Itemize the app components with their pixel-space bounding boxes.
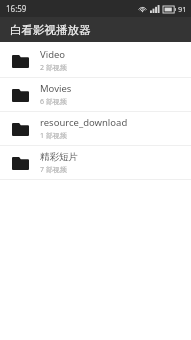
staticText: Video xyxy=(40,48,66,61)
button[interactable]: 精彩短片 xyxy=(0,146,191,179)
button[interactable]: resource_download xyxy=(0,112,191,145)
staticText: 6 部视频 xyxy=(40,97,67,107)
button[interactable]: Video xyxy=(0,44,191,77)
button[interactable]: Movies xyxy=(0,78,191,111)
staticText: 91 xyxy=(178,4,187,14)
staticText: 1 部视频 xyxy=(40,131,67,141)
staticText: 7 部视频 xyxy=(40,165,67,175)
staticText: 精彩短片 xyxy=(40,151,78,163)
staticText: Movies xyxy=(40,82,72,95)
staticText: 2 部视频 xyxy=(40,63,67,73)
staticText: 16:59 xyxy=(6,3,27,14)
staticText: 白看影视播放器 xyxy=(10,23,91,37)
staticText: resource_download xyxy=(40,116,128,129)
